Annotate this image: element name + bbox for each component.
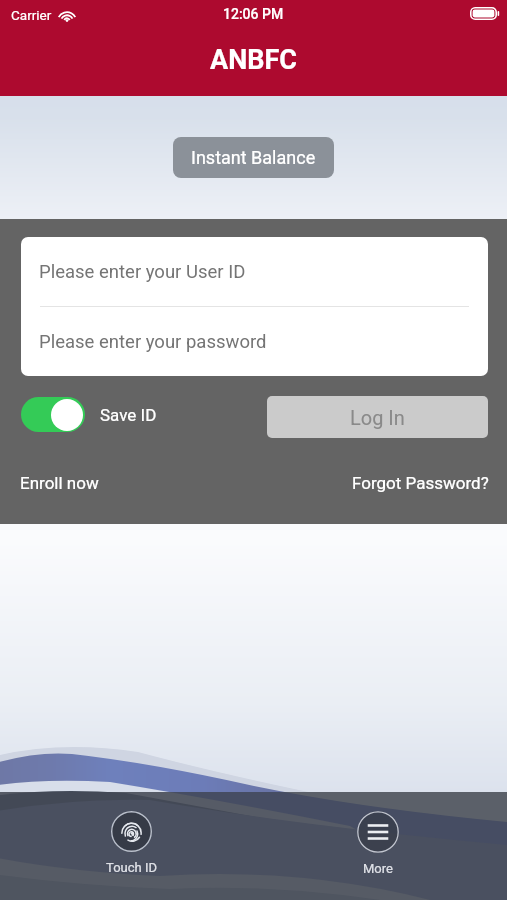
- button[interactable]: Instant Balance: [173, 137, 334, 178]
- staticText: Instant Balance: [191, 147, 316, 168]
- staticText: Enroll now: [20, 473, 99, 493]
- staticText: Log In: [350, 406, 405, 429]
- staticText: 12:06 PM: [223, 6, 284, 22]
- staticText: Forgot Password?: [352, 473, 489, 493]
- staticText: Touch ID: [106, 860, 157, 875]
- button[interactable]: Save ID: [21, 397, 157, 432]
- staticText: Please enter your User ID: [39, 261, 246, 283]
- button[interactable]: More: [333, 792, 423, 876]
- staticText: Save ID: [100, 405, 157, 425]
- button[interactable]: Forgot Password?: [352, 473, 489, 493]
- button[interactable]: Please enter your User ID: [21, 237, 488, 306]
- staticText: More: [363, 861, 393, 876]
- staticText: ANBFC: [210, 44, 297, 76]
- staticText: Carrier: [11, 7, 52, 23]
- button[interactable]: Enroll now: [20, 473, 99, 493]
- button[interactable]: Log In: [267, 396, 488, 438]
- staticText: Please enter your password: [39, 331, 267, 353]
- button[interactable]: Touch ID: [86, 792, 176, 875]
- button[interactable]: Please enter your password: [21, 307, 488, 376]
